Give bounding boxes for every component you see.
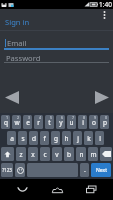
button[interactable]: Recent apps — [78, 179, 104, 200]
staticText: s — [21, 134, 25, 143]
button[interactable]: k — [84, 131, 93, 145]
button[interactable]: c — [40, 147, 50, 161]
button[interactable]: Home — [44, 179, 70, 200]
staticText: 1 — [6, 115, 9, 120]
staticText: 1:40 — [99, 0, 112, 9]
button[interactable]: h — [62, 131, 71, 145]
staticText: x — [31, 150, 35, 159]
button[interactable]: a — [7, 131, 16, 145]
button[interactable]: Shift — [1, 147, 14, 161]
staticText: g — [54, 134, 58, 143]
button[interactable]: Previous — [4, 89, 19, 105]
staticText: j — [77, 134, 79, 143]
button[interactable]: f — [40, 131, 49, 145]
staticText: a — [10, 134, 14, 143]
staticText: c — [43, 150, 47, 159]
button[interactable]: v — [52, 147, 62, 161]
button[interactable]: w — [12, 115, 21, 129]
staticText: 6 — [61, 115, 64, 120]
staticText: q — [4, 118, 8, 127]
staticText: o — [92, 118, 96, 127]
button[interactable]: l — [95, 131, 104, 145]
staticText: Password — [6, 53, 41, 61]
button[interactable]: y — [56, 115, 65, 129]
button[interactable]: q — [1, 115, 10, 129]
staticText: y — [59, 118, 63, 127]
staticText: f — [43, 134, 46, 143]
button[interactable]: Next — [94, 89, 109, 105]
staticText: 5 — [50, 115, 53, 120]
button[interactable]: t — [45, 115, 54, 129]
button[interactable]: e — [23, 115, 32, 129]
staticText: w — [14, 118, 20, 127]
staticText: i — [82, 118, 84, 127]
staticText: 4 — [39, 115, 42, 120]
staticText: ?123 — [2, 167, 12, 173]
button[interactable]: n — [76, 147, 86, 161]
staticText: u — [69, 118, 74, 127]
button[interactable]: ?123 — [1, 163, 13, 177]
button[interactable]: x — [28, 147, 38, 161]
staticText: t — [48, 118, 51, 127]
staticText: m — [90, 150, 97, 159]
button[interactable]: . — [80, 163, 89, 177]
staticText: 0 — [105, 115, 108, 120]
button[interactable]: o — [89, 115, 98, 129]
button[interactable]: Next — [91, 163, 111, 177]
staticText: k — [87, 134, 91, 143]
staticText: Sign in — [5, 17, 30, 27]
staticText: r — [37, 118, 40, 127]
staticText: 9 — [94, 115, 97, 120]
button[interactable]: i — [78, 115, 87, 129]
staticText: . — [84, 165, 86, 175]
button[interactable]: More options — [99, 9, 109, 21]
staticText: d — [32, 134, 36, 143]
staticText: e — [26, 118, 30, 127]
staticText: n — [79, 150, 84, 159]
button[interactable]: m — [88, 147, 98, 161]
staticText: Next — [96, 167, 107, 174]
button[interactable]: g — [51, 131, 60, 145]
staticText: b — [67, 150, 71, 159]
button[interactable]: s — [18, 131, 27, 145]
button[interactable]: r — [34, 115, 43, 129]
button[interactable]: Back — [9, 179, 35, 200]
button[interactable]: p — [100, 115, 109, 129]
staticText: 7 — [72, 115, 75, 120]
staticText: Email — [7, 38, 27, 47]
button[interactable]: j — [73, 131, 82, 145]
staticText: v — [55, 150, 59, 159]
button[interactable]: d — [29, 131, 38, 145]
staticText: 8 — [83, 115, 86, 120]
staticText: 2 — [17, 115, 20, 120]
staticText: p — [103, 118, 107, 127]
staticText: 3 — [28, 115, 31, 120]
staticText: h — [64, 134, 69, 143]
button[interactable]: Backspace — [100, 147, 112, 161]
button[interactable]: u — [67, 115, 76, 129]
button[interactable]: Emoji — [15, 163, 25, 177]
button[interactable]: b — [64, 147, 74, 161]
staticText: l — [99, 134, 101, 143]
staticText: z — [19, 150, 23, 159]
button[interactable]: z — [16, 147, 26, 161]
